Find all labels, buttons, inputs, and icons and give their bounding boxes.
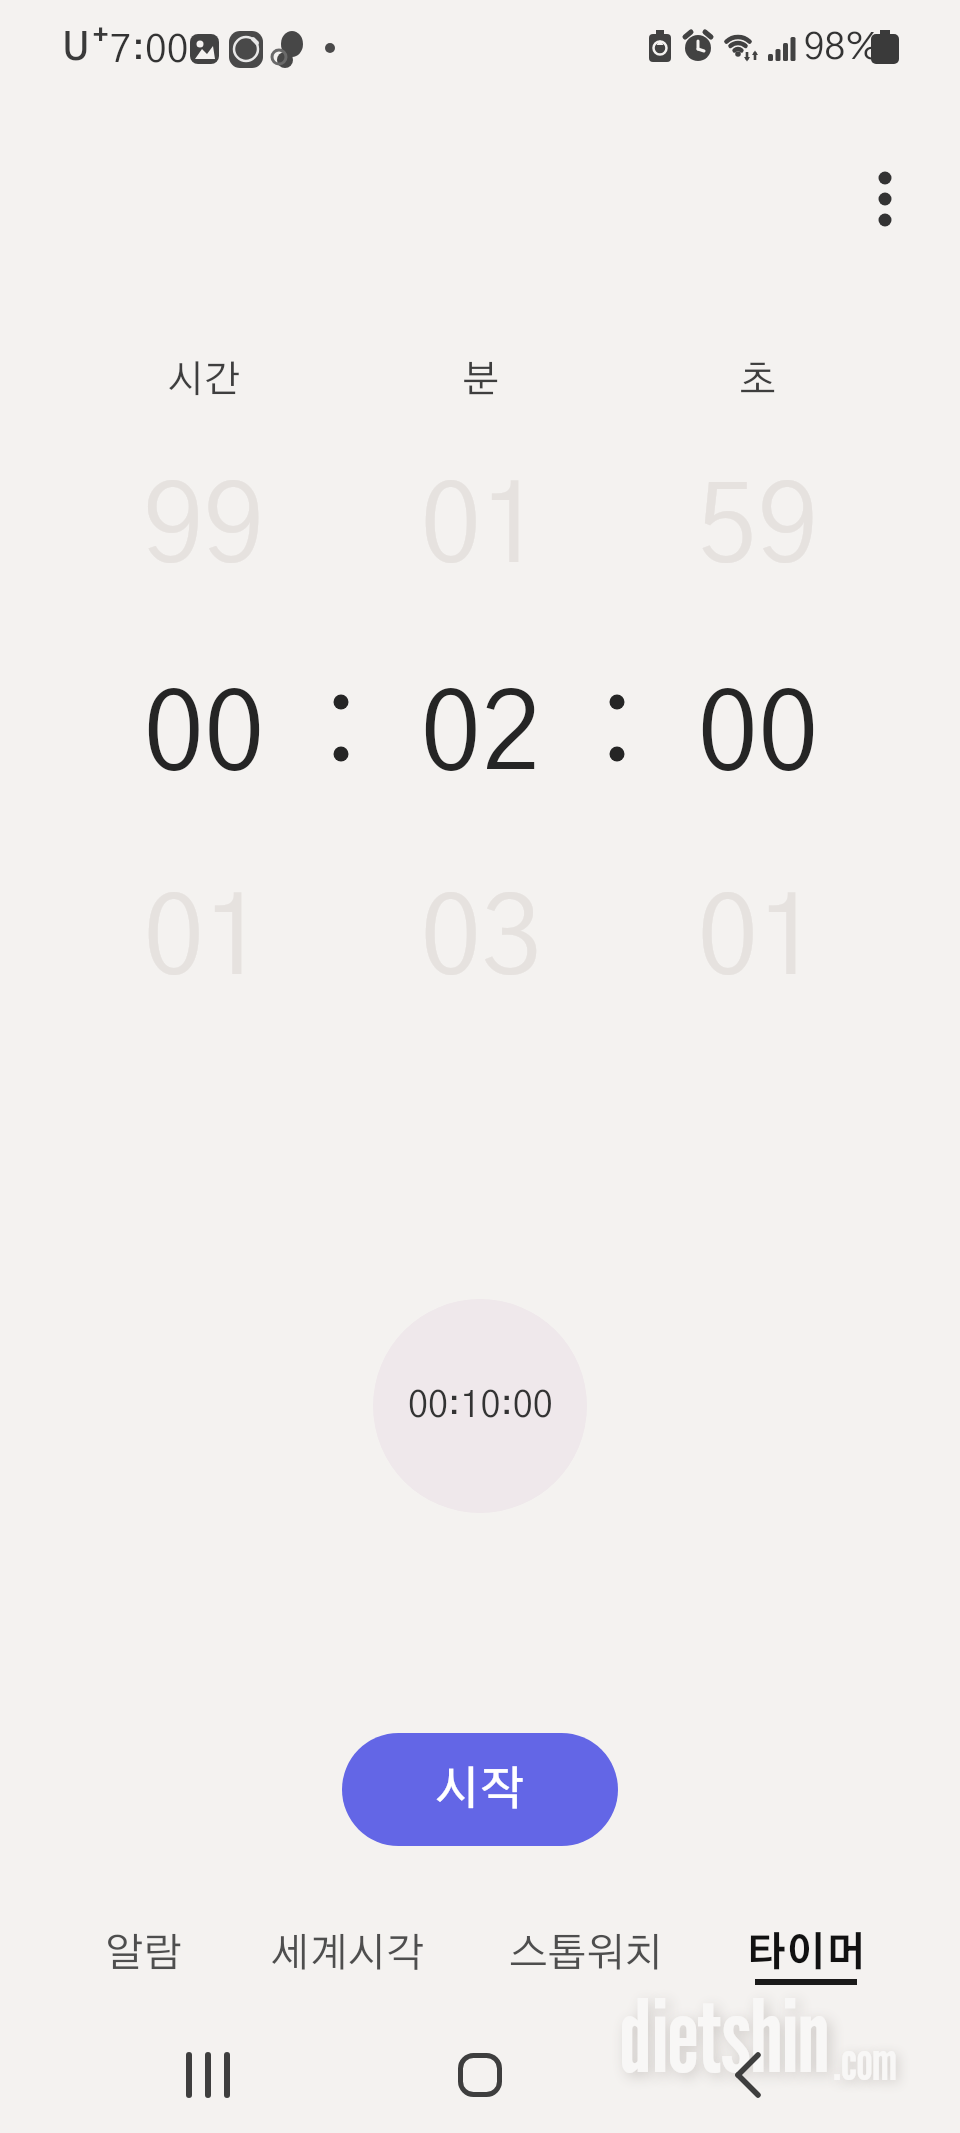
staticText: 스톱워치 bbox=[509, 1934, 663, 1974]
button[interactable]: 00 bbox=[619, 656, 896, 816]
button[interactable]: 02 bbox=[342, 656, 619, 816]
staticText: 7:00 bbox=[110, 31, 189, 70]
staticText: 01 bbox=[420, 474, 542, 583]
button[interactable]: 03 bbox=[342, 860, 619, 1020]
button[interactable]: 알람 bbox=[48, 1917, 238, 1991]
button[interactable]: 00 bbox=[65, 656, 342, 816]
button[interactable]: 스톱워치 bbox=[491, 1917, 681, 1991]
staticText: 세계시각 bbox=[271, 1934, 425, 1974]
staticText: 00 bbox=[697, 682, 819, 791]
button[interactable]: 01 bbox=[342, 448, 619, 608]
button[interactable]: 초 bbox=[619, 355, 896, 407]
button[interactable] bbox=[700, 2030, 795, 2120]
staticText: 타이머 bbox=[746, 1934, 866, 1974]
button[interactable]: 세계시각 bbox=[253, 1917, 443, 1991]
staticText: 시간 bbox=[167, 362, 241, 400]
staticText: 99 bbox=[143, 474, 265, 583]
staticText: dietshin bbox=[620, 1975, 830, 2095]
button[interactable]: 00:10:00 bbox=[373, 1299, 587, 1513]
button[interactable] bbox=[856, 160, 914, 238]
staticText: 01 bbox=[143, 886, 265, 995]
button[interactable]: 분 bbox=[342, 355, 619, 407]
button[interactable]: 01 bbox=[65, 860, 342, 1020]
staticText: 초 bbox=[739, 362, 776, 400]
staticText: U bbox=[62, 30, 90, 68]
button[interactable]: 시작 bbox=[342, 1733, 618, 1846]
staticText: 00 bbox=[143, 682, 265, 791]
staticText: 알람 bbox=[105, 1934, 182, 1974]
staticText: .com bbox=[833, 2030, 897, 2092]
staticText: 03 bbox=[420, 886, 542, 995]
staticText: 98% bbox=[804, 29, 881, 66]
staticText: 01 bbox=[697, 886, 819, 995]
button[interactable] bbox=[432, 2030, 527, 2120]
staticText: + bbox=[93, 23, 109, 49]
button[interactable]: 99 bbox=[65, 448, 342, 608]
staticText: 시작 bbox=[435, 1767, 525, 1813]
staticText: 59 bbox=[697, 474, 819, 583]
staticText: 분 bbox=[462, 362, 499, 400]
button[interactable]: 타이머 bbox=[711, 1917, 901, 1991]
staticText: 02 bbox=[420, 682, 542, 791]
staticText: 00:10:00 bbox=[408, 1388, 553, 1424]
button[interactable]: 01 bbox=[619, 860, 896, 1020]
button[interactable] bbox=[160, 2030, 255, 2120]
button[interactable]: 시간 bbox=[65, 355, 342, 407]
button[interactable]: 59 bbox=[619, 448, 896, 608]
